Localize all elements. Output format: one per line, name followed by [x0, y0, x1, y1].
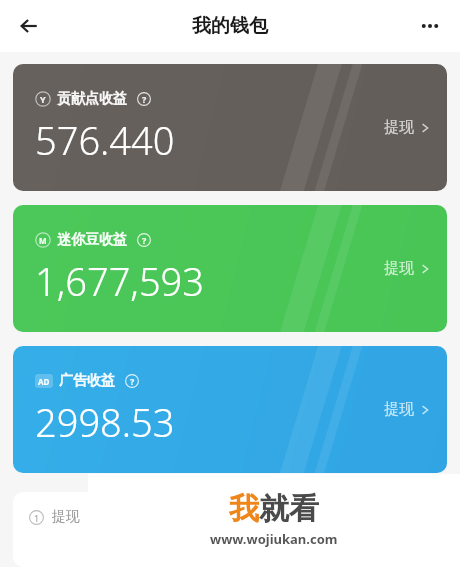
staticText: 1,677,593 — [35, 255, 204, 307]
staticText: M — [39, 235, 47, 246]
button[interactable]: 1 — [13, 492, 447, 567]
staticText: 我 — [229, 490, 259, 528]
button[interactable]: Help — [136, 232, 152, 248]
button[interactable]: Y — [13, 64, 447, 191]
staticText: ? — [142, 93, 147, 105]
staticText: 就看 — [259, 490, 319, 528]
button[interactable]: 提现 — [384, 400, 431, 419]
button[interactable]: Back — [8, 4, 52, 48]
staticText: www.wojiukan.com — [210, 530, 338, 548]
staticText: 提现 — [384, 259, 414, 278]
staticText: 迷你豆收益 — [57, 231, 127, 249]
button[interactable]: Help — [136, 91, 152, 107]
button[interactable]: More options — [408, 4, 452, 48]
staticText: AD — [38, 376, 50, 387]
staticText: 贡献点收益 — [57, 90, 127, 108]
button[interactable]: 提现 — [384, 259, 431, 278]
staticText: 576.440 — [35, 114, 175, 166]
staticText: Y — [40, 93, 46, 105]
button[interactable]: AD — [13, 346, 447, 473]
staticText: 1 — [34, 512, 40, 524]
staticText: ? — [130, 375, 135, 387]
button[interactable]: M — [13, 205, 447, 332]
staticText: 提现 — [52, 508, 80, 526]
staticText: 提现 — [384, 118, 414, 137]
staticText: 提现 — [384, 400, 414, 419]
staticText: ? — [142, 234, 147, 246]
staticText: 我的钱包 — [192, 14, 268, 38]
button[interactable]: Help — [124, 373, 140, 389]
staticText: 2998.53 — [35, 396, 175, 448]
staticText: 广告收益 — [59, 372, 115, 390]
button[interactable]: 提现 — [384, 118, 431, 137]
